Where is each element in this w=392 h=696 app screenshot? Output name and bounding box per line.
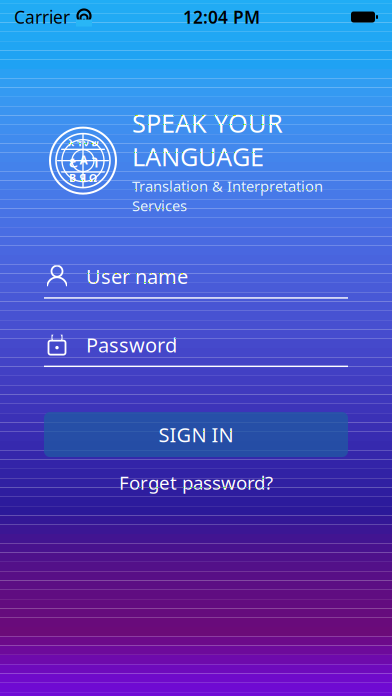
staticText: Translation & Interpretation Services [132,176,323,215]
staticText: ש ν ד λ [68,136,98,149]
button[interactable]: SIGN IN [44,412,348,457]
staticText: SIGN IN [158,421,233,448]
staticText: ך A ع [68,152,98,168]
staticText: Carrier [14,5,70,28]
button[interactable]: Forget password? [109,464,283,501]
staticText: B Я Ω [69,171,97,185]
staticText: User name [86,263,188,290]
staticText: Password [86,331,177,358]
staticText: Forget password? [119,470,273,495]
staticText: 12:04 PM [183,5,260,28]
staticText: SPEAK YOUR LANGUAGE [132,106,283,173]
